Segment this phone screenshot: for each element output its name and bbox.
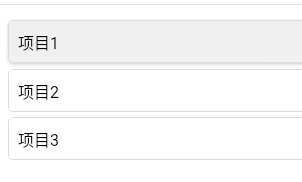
staticText: 项目1 — [18, 30, 59, 53]
button[interactable]: 项目1 — [8, 20, 302, 63]
button[interactable]: 项目2 — [8, 69, 302, 112]
button[interactable]: 项目3 — [8, 117, 302, 160]
staticText: 项目2 — [18, 79, 59, 102]
staticText: 项目3 — [18, 127, 59, 150]
